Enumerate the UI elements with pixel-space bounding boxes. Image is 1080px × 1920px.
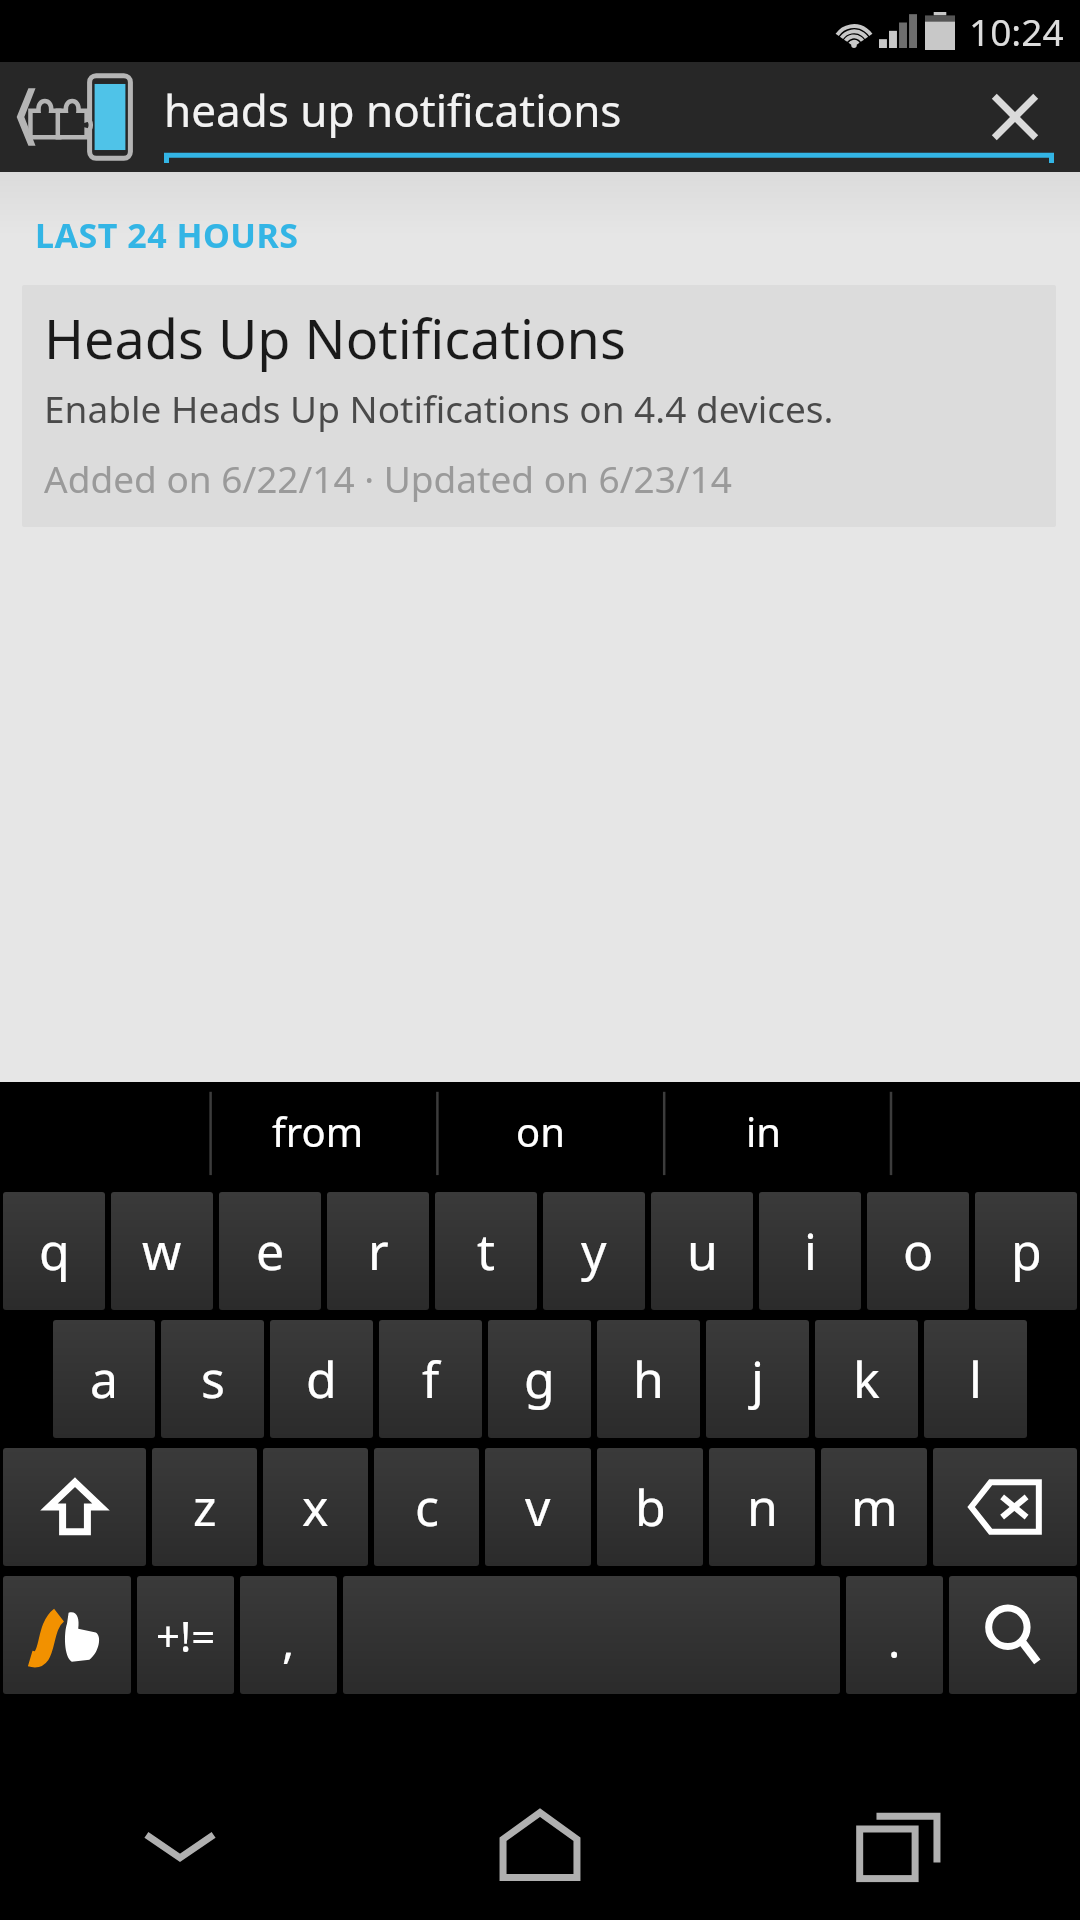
button[interactable]: s [161,1320,264,1438]
staticText: l [969,1345,982,1413]
staticText: in [746,1104,782,1158]
staticText: . [888,1609,901,1672]
staticText: n [747,1473,778,1541]
button[interactable]: on [429,1082,652,1180]
button[interactable]: n [709,1448,815,1566]
button[interactable]: a [53,1320,155,1438]
button[interactable]: m [821,1448,927,1566]
staticText: w [142,1217,182,1285]
staticText: v [525,1473,551,1541]
button[interactable]: f [379,1320,482,1438]
button[interactable]: w [111,1192,213,1310]
staticText: o [903,1217,934,1285]
button[interactable]: r [327,1192,429,1310]
button[interactable]: +!= [137,1576,234,1694]
button[interactable]: x [263,1448,368,1566]
button[interactable]: t [435,1192,537,1310]
button[interactable]: c [374,1448,479,1566]
staticText: p [1011,1217,1042,1285]
staticText: u [687,1217,718,1285]
button[interactable]: Home [360,1770,720,1920]
button[interactable]: u [651,1192,753,1310]
staticText: LAST 24 HOURS [35,212,299,258]
staticText: d [306,1345,337,1413]
button[interactable]: o [867,1192,969,1310]
button[interactable]: l [924,1320,1027,1438]
staticText: j [751,1345,764,1413]
staticText: c [415,1473,439,1541]
button[interactable]: d [270,1320,373,1438]
button[interactable]: Shift [3,1448,146,1566]
button[interactable]: Gesture typing [3,1576,131,1694]
staticText: h [633,1345,664,1413]
button[interactable]: b [597,1448,703,1566]
staticText: z [193,1473,217,1541]
button[interactable]: h [597,1320,700,1438]
button[interactable]: q [3,1192,105,1310]
button[interactable]: e [219,1192,321,1310]
staticText: on [516,1104,565,1158]
button[interactable]: . [846,1576,943,1694]
button[interactable]: from [206,1082,429,1180]
staticText: b [635,1473,666,1541]
staticText: Heads Up Notifications [44,301,626,375]
button[interactable]: , [240,1576,337,1694]
staticText: Added on 6/22/14 · Updated on 6/23/14 [44,453,732,503]
button[interactable]: in [652,1082,875,1180]
staticText: 10:24 [969,6,1064,56]
staticText: from [272,1104,364,1158]
button[interactable]: g [488,1320,591,1438]
button[interactable]: Navigate up [0,62,152,172]
staticText: q [39,1217,70,1285]
staticText: g [524,1345,555,1413]
staticText: e [256,1217,285,1285]
staticText: t [477,1217,496,1285]
button[interactable]: j [706,1320,809,1438]
staticText: +!= [156,1607,216,1664]
button[interactable]: y [543,1192,645,1310]
staticText: x [302,1473,329,1541]
staticText: s [201,1345,225,1413]
button[interactable]: Recent apps [720,1770,1080,1920]
staticText: k [853,1345,880,1413]
button[interactable]: Backspace [933,1448,1077,1566]
button[interactable]: Heads Up Notifications [22,285,1056,527]
staticText: r [368,1217,389,1285]
button[interactable]: Clear search [950,62,1080,172]
staticText: , [282,1609,295,1672]
button[interactable]: v [485,1448,591,1566]
button[interactable]: i [759,1192,861,1310]
button[interactable]: Search [949,1576,1077,1694]
staticText: i [804,1217,817,1285]
staticText: heads up notifications [164,80,622,140]
staticText: y [581,1217,607,1285]
button[interactable]: Hide keyboard [0,1770,360,1920]
button[interactable]: Space [343,1576,840,1694]
staticText: m [851,1473,898,1541]
staticText: a [90,1345,119,1413]
button[interactable]: k [815,1320,918,1438]
staticText: Enable Heads Up Notifications on 4.4 dev… [44,383,834,433]
staticText: f [422,1345,440,1413]
button[interactable] [875,1082,1080,1180]
button[interactable]: p [975,1192,1077,1310]
button[interactable]: z [152,1448,257,1566]
